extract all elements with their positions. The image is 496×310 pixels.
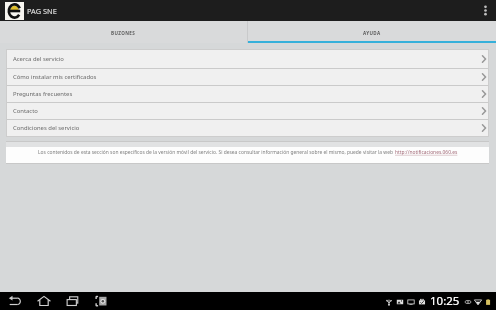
staticText: 10:25 [430, 293, 460, 309]
button[interactable]: AYUDA [248, 21, 496, 43]
staticText: Acerca del servicio [13, 55, 64, 63]
button[interactable]: Condiciones del servicio [6, 120, 489, 136]
button[interactable]: Screenshot [87, 292, 116, 310]
button[interactable]: Home [29, 292, 58, 310]
staticText: Contacto [13, 107, 38, 115]
staticText: Cómo instalar mis certificados [13, 73, 97, 81]
button[interactable]: Recents [58, 292, 87, 310]
button[interactable]: Preguntas frecuentes [6, 86, 489, 102]
button[interactable]: Acerca del servicio [6, 50, 489, 68]
staticText: http://notificaciones.060.es [395, 149, 458, 156]
staticText: PAG SNE [27, 6, 57, 16]
staticText: Los contenidos de esta sección son espec… [38, 149, 395, 156]
button[interactable]: More options [474, 0, 496, 21]
button[interactable]: Cómo instalar mis certificados [6, 69, 489, 85]
staticText: BUZONES [111, 30, 136, 36]
staticText: Condiciones del servicio [13, 124, 80, 132]
button[interactable]: BUZONES [0, 21, 247, 43]
staticText: AYUDA [363, 30, 381, 36]
staticText: Preguntas frecuentes [13, 90, 73, 98]
button[interactable]: Contacto [6, 103, 489, 119]
button[interactable]: Back [0, 292, 29, 310]
